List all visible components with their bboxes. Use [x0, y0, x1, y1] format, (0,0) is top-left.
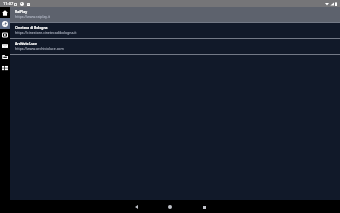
- button[interactable]: List: [0, 62, 10, 73]
- button[interactable]: Recents: [187, 201, 221, 213]
- button[interactable]: RaiPlay: [10, 7, 340, 22]
- button[interactable]: Home: [0, 7, 10, 18]
- staticText: https://cinestore.cinetecadibologna.it: [15, 30, 77, 35]
- staticText: https://www.raiplay.it: [15, 14, 51, 19]
- button[interactable]: Home: [153, 201, 187, 213]
- staticText: 11:07: [3, 1, 14, 6]
- button[interactable]: Mail: [0, 40, 10, 51]
- button[interactable]: Files: [0, 51, 10, 62]
- staticText: RaiPlay: [15, 9, 28, 13]
- staticText: Archivio Luce: [15, 41, 37, 45]
- staticText: Cineteca di Bologna: [15, 25, 48, 29]
- button[interactable]: Cineteca di Bologna: [10, 23, 340, 38]
- button[interactable]: Web: [0, 18, 10, 29]
- button[interactable]: Back: [119, 201, 153, 213]
- button[interactable]: Archivio Luce: [10, 39, 340, 54]
- staticText: https://www.archivioluce.com: [15, 46, 64, 51]
- button[interactable]: Video: [0, 29, 10, 40]
